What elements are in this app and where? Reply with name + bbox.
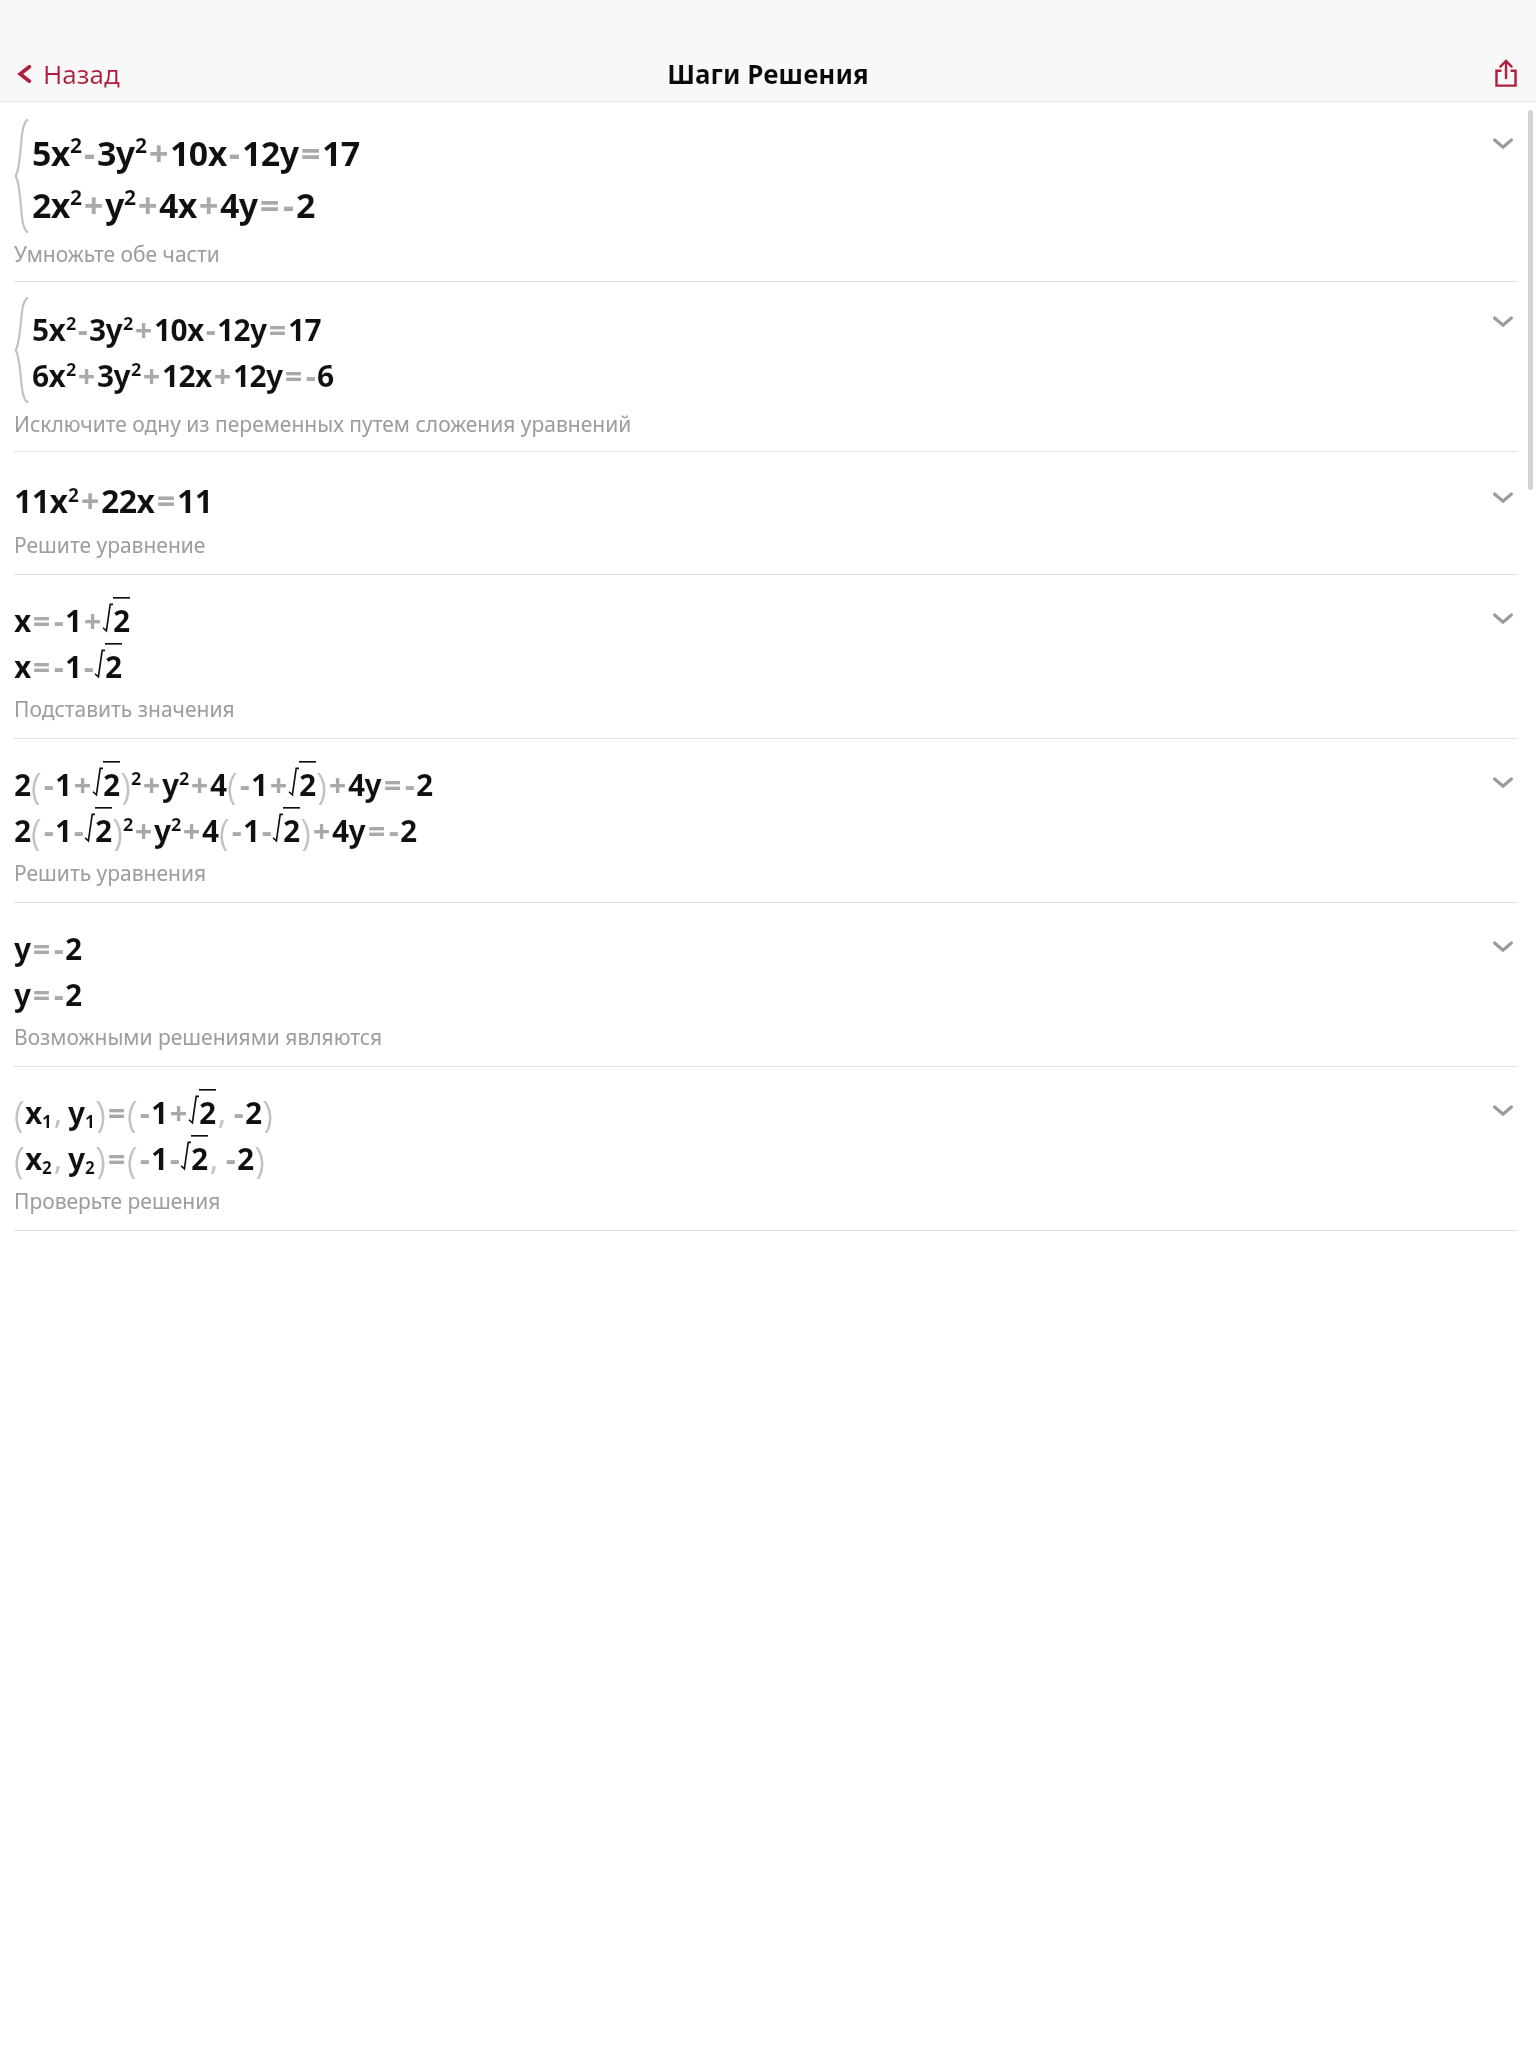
staticText: + (138, 182, 157, 228)
staticText: = (285, 355, 302, 396)
button[interactable]: x (0, 575, 1536, 738)
staticText: = (368, 810, 385, 851)
staticText: Возможными решениями являются (14, 1023, 383, 1052)
staticText: = (260, 182, 279, 228)
staticText: y (68, 1092, 85, 1133)
staticText: + (84, 600, 101, 641)
staticText: 2 (65, 974, 82, 1015)
staticText: y (14, 928, 31, 969)
staticText: 4 (202, 810, 219, 851)
staticText: 1 (42, 1110, 52, 1133)
staticText: - (283, 182, 294, 228)
staticText: + (143, 764, 160, 805)
staticText: 5x (32, 309, 66, 350)
staticText: 2x (32, 182, 70, 228)
staticText: 4y (348, 764, 382, 805)
staticText: y (162, 764, 179, 805)
staticText: = (269, 309, 286, 350)
staticText: Проверьте решения (14, 1187, 221, 1216)
staticText: , (218, 1092, 226, 1133)
staticText: 2 (416, 764, 433, 805)
staticText: + (183, 810, 200, 851)
staticText: + (170, 1092, 187, 1133)
button[interactable]: Назад (0, 50, 132, 97)
staticText: - (78, 309, 87, 350)
button[interactable]: y (0, 903, 1536, 1066)
staticText: 2 (131, 357, 141, 382)
staticText: ( (227, 759, 238, 805)
staticText: + (329, 764, 346, 805)
staticText: 2 (95, 810, 112, 851)
staticText: 2 (66, 357, 76, 382)
staticText: 1 (55, 764, 72, 805)
staticText: - (44, 810, 53, 851)
staticText: , (54, 1138, 62, 1179)
button[interactable]: 2 (0, 739, 1536, 902)
staticText: Решить уравнения (14, 859, 207, 888)
staticText: Шаги Решения (667, 56, 869, 91)
staticText: + (149, 130, 168, 176)
staticText: 11x (14, 479, 68, 523)
staticText: ( (14, 1133, 25, 1179)
button[interactable]: 5x (0, 282, 1536, 451)
staticText: 4x (159, 182, 197, 228)
other: Expand step (1488, 306, 1518, 336)
staticText: - (74, 810, 83, 851)
staticText: Решите уравнение (14, 531, 206, 560)
staticText: = (301, 130, 320, 176)
staticText: 2 (171, 812, 181, 837)
staticText: - (170, 1138, 179, 1179)
staticText: 2 (131, 766, 141, 791)
staticText: 2 (400, 810, 417, 851)
staticText: ) (95, 1133, 106, 1179)
staticText: 11 (177, 479, 213, 523)
staticText: - (405, 764, 414, 805)
staticText: = (33, 974, 50, 1015)
staticText: 2 (135, 131, 147, 160)
other: Expand step (1488, 767, 1518, 797)
staticText: - (54, 974, 63, 1015)
staticText: - (306, 355, 315, 396)
other: Expand step (1488, 482, 1518, 512)
staticText: Умножьте обе части (14, 240, 220, 269)
button[interactable]: 5x (0, 102, 1536, 281)
staticText: + (270, 764, 287, 805)
staticText: Назад (43, 56, 120, 91)
staticText: ( (31, 805, 42, 851)
staticText: x (25, 1092, 42, 1133)
staticText: Исключите одну из переменных путем сложе… (14, 410, 632, 439)
staticText: 2 (237, 1138, 254, 1179)
staticText: 22x (101, 479, 155, 523)
staticText: y (68, 1138, 85, 1179)
staticText: 2 (66, 311, 76, 336)
staticText: + (199, 182, 218, 228)
button[interactable]: 11x (0, 452, 1536, 574)
staticText: 12x (162, 355, 212, 396)
other: Expand step (1488, 931, 1518, 961)
staticText: 2 (113, 600, 130, 641)
staticText: x (25, 1138, 42, 1179)
staticText: 6 (317, 355, 334, 396)
button[interactable]: ( (0, 1067, 1536, 1230)
staticText: 2 (179, 766, 189, 791)
staticText: ) (112, 805, 123, 851)
staticText: - (54, 600, 63, 641)
staticText: ( (14, 1087, 25, 1133)
staticText: - (84, 130, 95, 176)
staticText: x (14, 600, 31, 641)
staticText: + (78, 355, 95, 396)
staticText: 2 (123, 311, 133, 336)
staticText: y (14, 974, 31, 1015)
staticText: ( (127, 1133, 138, 1179)
staticText: ) (300, 805, 311, 851)
staticText: - (389, 810, 398, 851)
staticText: ) (254, 1133, 265, 1179)
staticText: + (74, 764, 91, 805)
staticText: = (108, 1092, 125, 1133)
staticText: = (33, 600, 50, 641)
button[interactable]: Share (1476, 51, 1536, 95)
staticText: - (229, 130, 240, 176)
staticText: - (54, 928, 63, 969)
staticText: 3y (89, 309, 123, 350)
staticText: 1 (243, 810, 260, 851)
